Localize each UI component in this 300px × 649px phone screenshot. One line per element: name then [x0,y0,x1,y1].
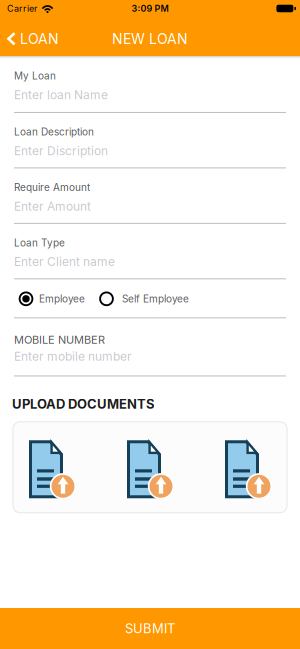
button[interactable]: Upload document 1 [29,440,75,498]
staticText: Enter mobile number [14,349,132,363]
staticText: Loan Type [14,237,65,249]
button[interactable]: Upload document 2 [127,440,173,498]
button[interactable]: Upload document 3 [225,440,271,498]
staticText: UPLOAD DOCUMENTS [12,396,155,412]
button[interactable]: Self Employee [99,291,189,306]
staticText: Enter Amount [14,199,91,213]
staticText: MOBILE NUMBER [14,333,105,346]
staticText: LOAN [20,31,59,47]
staticText: My Loan [14,70,56,82]
staticText: Loan Description [14,126,94,138]
staticText: Self Employee [122,293,189,305]
staticText: Enter loan Name [14,88,108,102]
button[interactable]: Employee [18,291,85,306]
button[interactable]: SUBMIT [0,608,300,649]
staticText: Enter Discription [14,144,108,158]
staticText: Employee [39,293,85,305]
staticText: Enter Client name [14,255,115,269]
staticText: Require Amount [14,181,90,193]
button[interactable]: Back to Loan [0,31,59,47]
staticText: SUBMIT [125,621,175,636]
staticText: Carrier [7,3,37,14]
staticText: 3:09 PM [131,3,168,14]
staticText: NEW LOAN [112,31,188,47]
